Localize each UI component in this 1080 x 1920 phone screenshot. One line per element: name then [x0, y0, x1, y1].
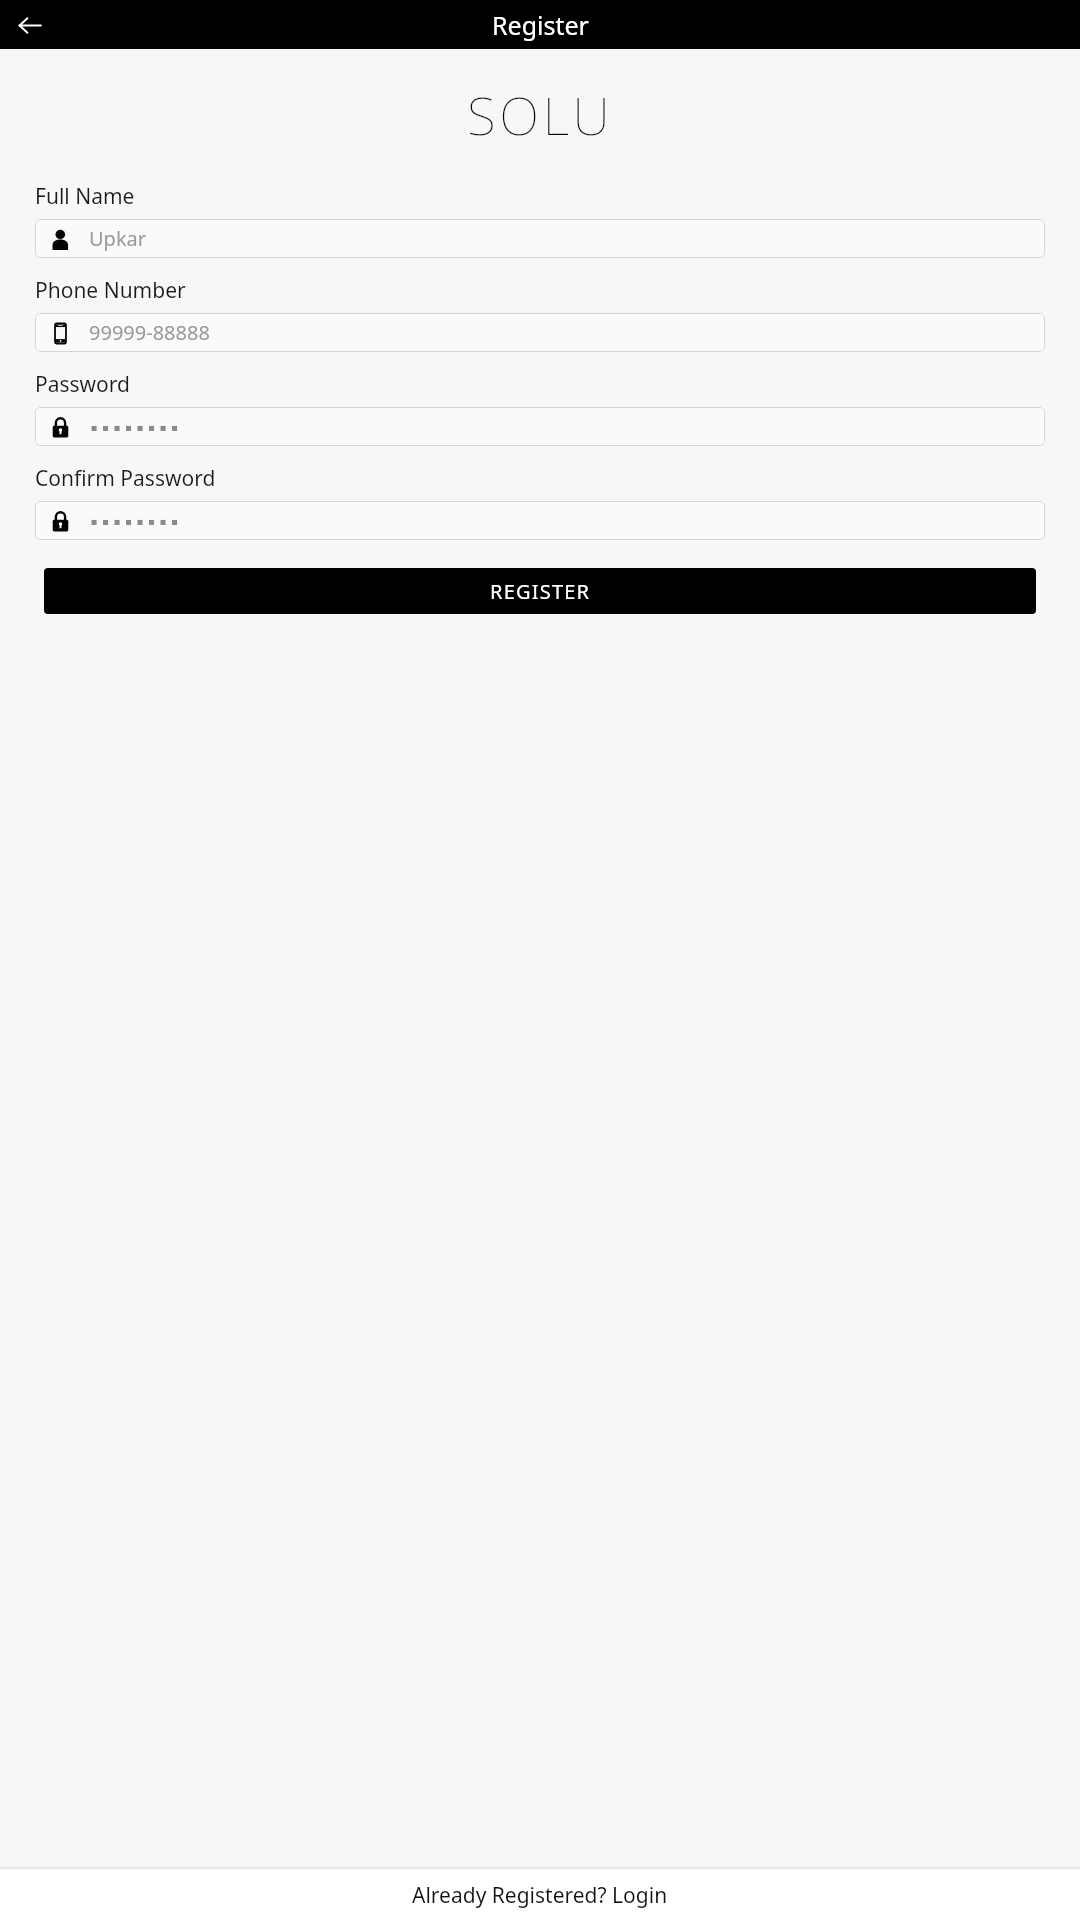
- staticText: Confirm Password: [35, 464, 216, 493]
- staticText: Upkar: [89, 225, 147, 252]
- staticText: Register: [492, 8, 589, 42]
- staticText: SOLU: [467, 79, 614, 150]
- button[interactable]: 99999-88888: [35, 313, 1045, 352]
- staticText: Already Registered? Login: [412, 1881, 668, 1910]
- staticText: Full Name: [35, 182, 135, 211]
- button[interactable]: [35, 501, 1045, 540]
- button[interactable]: [35, 407, 1045, 446]
- button[interactable]: Already Registered? Login: [392, 1873, 688, 1918]
- staticText: 99999-88888: [89, 319, 210, 346]
- staticText: Phone Number: [35, 276, 186, 305]
- button[interactable]: Back: [6, 1, 54, 49]
- button[interactable]: Upkar: [35, 219, 1045, 258]
- button[interactable]: REGISTER: [44, 568, 1036, 614]
- staticText: Password: [35, 370, 130, 399]
- staticText: REGISTER: [490, 578, 591, 605]
